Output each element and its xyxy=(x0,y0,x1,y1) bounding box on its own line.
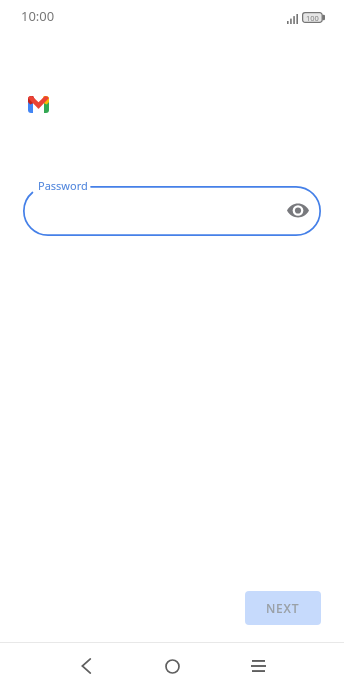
staticText: NEXT xyxy=(266,600,300,616)
button[interactable]: Show password xyxy=(282,194,314,226)
button[interactable]: Back xyxy=(64,644,108,688)
button[interactable]: NEXT xyxy=(245,591,321,625)
staticText: 100 xyxy=(306,13,319,23)
button[interactable]: Password xyxy=(23,186,321,236)
staticText: 10:00 xyxy=(21,7,55,25)
button[interactable]: Home xyxy=(150,644,194,688)
staticText: Password xyxy=(38,178,88,193)
button[interactable]: Recent apps xyxy=(236,644,280,688)
